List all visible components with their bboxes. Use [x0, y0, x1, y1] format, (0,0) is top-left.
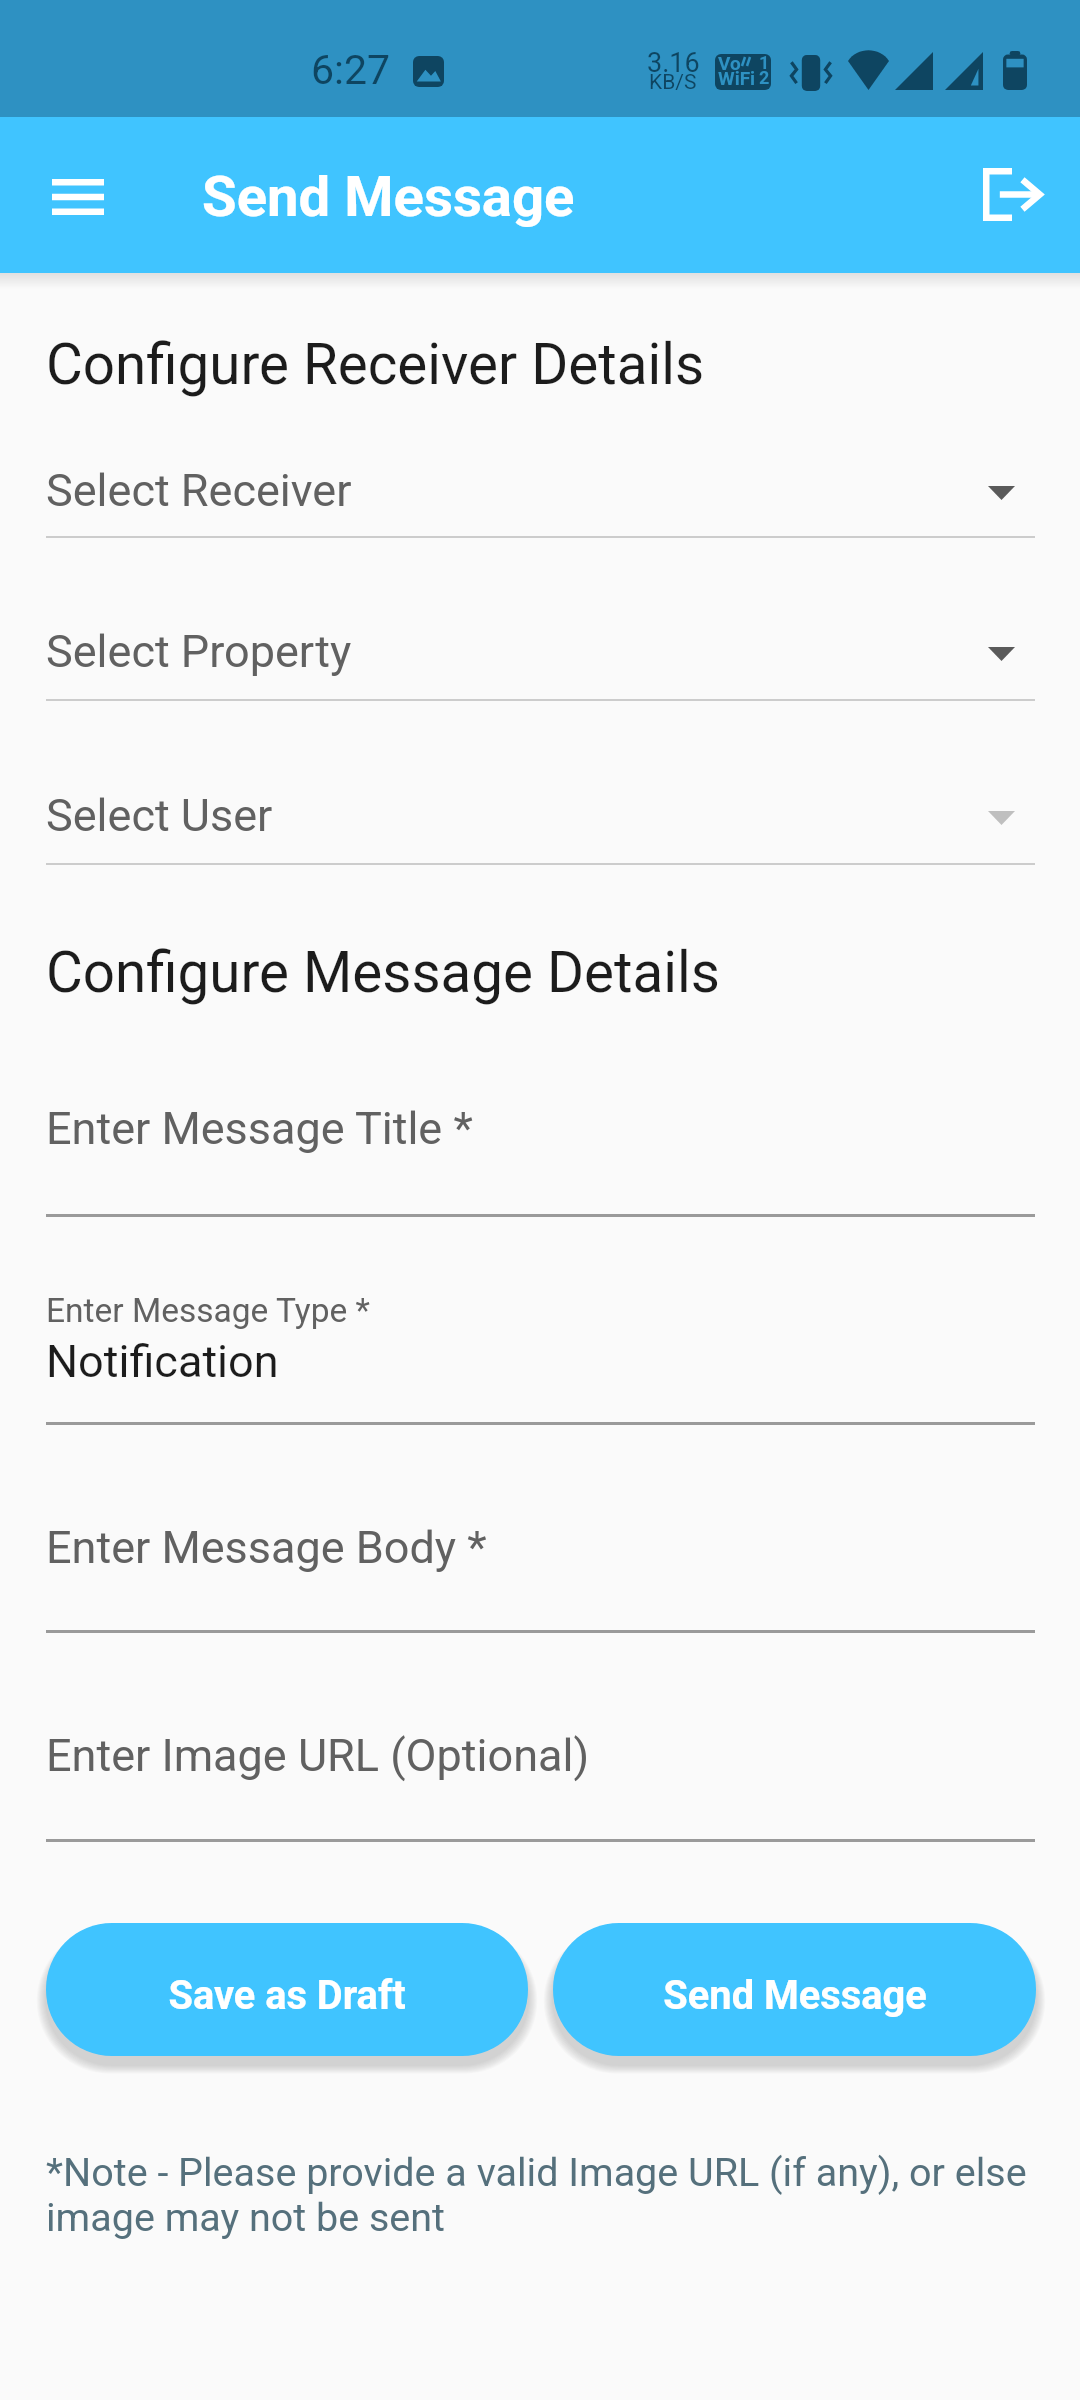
button[interactable]: Enter Image URL (Optional)	[46, 1723, 1035, 1842]
staticText: Vo	[718, 54, 741, 74]
button[interactable]: Send Message	[553, 1923, 1036, 2056]
staticText: 6:27	[311, 46, 391, 94]
button[interactable]: Select Property	[46, 625, 1035, 701]
staticText: 1	[759, 54, 770, 73]
button[interactable]: Open navigation menu	[22, 141, 134, 253]
staticText: Configure Message Details	[46, 940, 720, 1006]
staticText: Enter Message Body *	[46, 1521, 487, 1574]
staticText: Notification	[46, 1335, 279, 1388]
staticText: 2	[759, 67, 770, 88]
staticText: Enter Message Type *	[46, 1291, 370, 1330]
staticText: Save as Draft	[168, 1972, 406, 2019]
button[interactable]: Enter Message Type *	[46, 1280, 1035, 1425]
staticText: WiFi	[718, 67, 756, 89]
staticText: Send Message	[202, 164, 575, 230]
staticText: Select Property	[46, 625, 352, 678]
staticText: Select User	[46, 789, 273, 842]
staticText: Enter Message Title *	[46, 1102, 473, 1155]
button[interactable]: Enter Message Title *	[46, 1096, 1035, 1217]
staticText: Configure Receiver Details	[46, 332, 705, 398]
staticText: KB/S	[649, 70, 697, 95]
staticText: Enter Image URL (Optional)	[46, 1729, 590, 1782]
button[interactable]: Select User	[46, 789, 1035, 865]
staticText: Send Message	[663, 1972, 927, 2019]
button[interactable]: Enter Message Body *	[46, 1515, 1035, 1633]
staticText: 3.16	[647, 47, 700, 79]
staticText: Select Receiver	[46, 464, 352, 517]
staticText: *Note - Please provide a valid Image URL…	[46, 2149, 1046, 2241]
button[interactable]: Select Receiver	[46, 464, 1035, 538]
button[interactable]: Save as Draft	[46, 1923, 528, 2056]
button[interactable]: Logout	[956, 138, 1068, 250]
